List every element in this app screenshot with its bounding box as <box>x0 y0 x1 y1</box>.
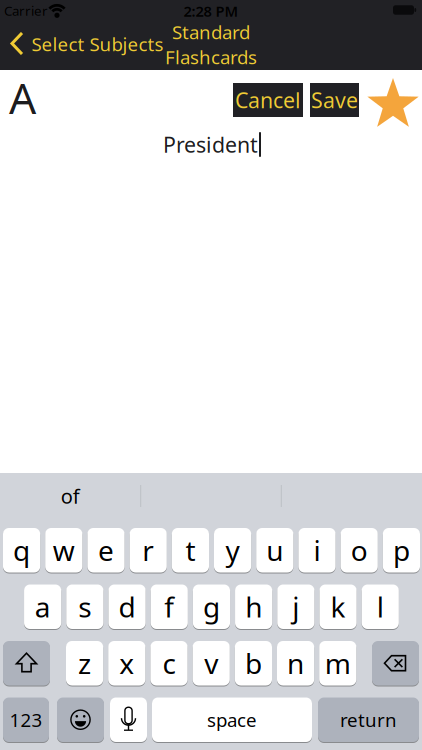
button[interactable]: r <box>130 528 167 572</box>
staticText: z <box>78 645 91 682</box>
button[interactable]: u <box>256 528 293 572</box>
staticText: q <box>13 532 30 569</box>
staticText: Standard <box>172 20 250 44</box>
button[interactable]: k <box>319 584 357 629</box>
button[interactable]: h <box>235 584 272 629</box>
staticText: k <box>331 588 346 625</box>
staticText: s <box>78 588 91 625</box>
button[interactable]: z <box>66 641 103 685</box>
staticText: Flashcards <box>165 44 257 69</box>
button[interactable]: return <box>318 697 419 742</box>
button[interactable]: Shift <box>3 641 50 685</box>
staticText: Cancel <box>235 86 301 114</box>
staticText: space <box>207 707 257 732</box>
button[interactable]: p <box>383 528 420 572</box>
staticText: i <box>313 532 320 569</box>
staticText: A <box>9 69 36 126</box>
staticText: j <box>292 588 299 625</box>
staticText: t <box>185 532 195 569</box>
staticText: Select Subjects <box>31 32 163 56</box>
staticText: n <box>287 645 304 682</box>
button[interactable]: Emoji <box>57 697 104 742</box>
button[interactable]: i <box>298 528 336 572</box>
button[interactable]: b <box>235 641 272 685</box>
button[interactable]: v <box>193 641 230 685</box>
button[interactable]: Select Subjects <box>10 32 163 56</box>
button[interactable]: y <box>214 528 251 572</box>
staticText: 2:28 PM <box>183 1 238 21</box>
staticText: h <box>245 588 262 625</box>
staticText: a <box>35 588 51 625</box>
staticText: e <box>98 532 114 569</box>
button[interactable]: c <box>150 641 188 685</box>
button[interactable]: l <box>362 584 399 629</box>
staticText: Save <box>311 86 358 114</box>
button[interactable]: Save <box>310 83 359 117</box>
staticText: of <box>61 483 80 509</box>
staticText: p <box>393 532 410 569</box>
button[interactable]: t <box>172 528 209 572</box>
button[interactable]: s <box>66 584 103 629</box>
staticText: l <box>377 588 384 625</box>
staticText: g <box>203 588 220 625</box>
staticText: v <box>204 645 218 682</box>
staticText: f <box>164 588 174 625</box>
button[interactable]: g <box>193 584 230 629</box>
button[interactable]: space <box>152 697 312 742</box>
staticText: w <box>53 532 75 569</box>
staticText: y <box>226 532 240 569</box>
button[interactable]: n <box>277 641 314 685</box>
button[interactable]: Delete <box>372 641 419 685</box>
button[interactable]: m <box>319 641 356 685</box>
staticText: President <box>163 130 258 159</box>
button[interactable]: Dictate <box>110 697 147 742</box>
staticText: return <box>340 707 397 732</box>
staticText: r <box>142 532 154 569</box>
staticText: m <box>325 645 351 682</box>
button[interactable]: Favorite <box>366 78 420 132</box>
staticText: b <box>245 645 262 682</box>
button[interactable]: d <box>108 584 146 629</box>
staticText: x <box>119 645 134 682</box>
staticText: Carrier <box>4 2 48 19</box>
button[interactable]: a <box>24 584 61 629</box>
button[interactable]: f <box>151 584 188 629</box>
button[interactable]: x <box>108 641 145 685</box>
staticText: o <box>351 532 368 569</box>
button[interactable]: o <box>341 528 378 572</box>
staticText: 123 <box>9 707 42 732</box>
staticText: d <box>119 588 136 625</box>
button[interactable]: j <box>277 584 314 629</box>
button[interactable]: 123 <box>3 697 49 742</box>
button[interactable]: q <box>3 528 40 572</box>
button[interactable]: e <box>87 528 125 572</box>
button[interactable]: w <box>45 528 82 572</box>
staticText: c <box>162 645 175 682</box>
button[interactable]: Cancel <box>233 83 303 117</box>
button[interactable]: of <box>10 478 130 514</box>
staticText: u <box>266 532 283 569</box>
